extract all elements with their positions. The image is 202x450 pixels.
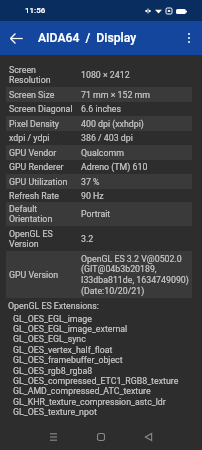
staticText: 386 / 403 dpi <box>81 133 133 143</box>
staticText: Screen Resolution <box>9 65 81 85</box>
button[interactable]: GPU Vendor <box>6 145 192 160</box>
staticText: GL_KHR_texture_compression_astc_ldr <box>13 397 166 407</box>
staticText: 11:56 <box>25 6 46 15</box>
button[interactable]: Refresh Rate <box>6 189 192 202</box>
staticText: 90 Hz <box>81 191 104 201</box>
button[interactable]: Navigate up <box>0 21 32 55</box>
staticText: GPU Vendor <box>9 148 81 158</box>
staticText: OpenGL ES Extensions: <box>8 301 99 311</box>
staticText: 1080 × 2412 <box>81 70 130 80</box>
staticText: Refresh Rate <box>9 191 81 201</box>
staticText: GL_OES_EGL_sync <box>13 334 86 344</box>
button[interactable]: Screen Diagonal <box>6 102 192 116</box>
staticText: 71 mm × 152 mm <box>81 90 151 100</box>
staticText: 37 % <box>81 177 100 187</box>
staticText: GL_AMD_compressed_ATC_texture <box>13 386 151 396</box>
button[interactable]: Back <box>134 423 162 450</box>
staticText: OpenGL ES Version <box>9 229 81 249</box>
staticText: 6.6 inches <box>81 104 122 114</box>
staticText: 3.2 <box>81 234 94 244</box>
staticText: Default Orientation <box>9 204 81 224</box>
staticText: 400 dpi (xxhdpi) <box>81 119 144 129</box>
staticText: GL_OES_framebuffer_object <box>13 355 123 365</box>
staticText: GL_OES_EGL_image <box>13 314 92 324</box>
button[interactable]: Pixel Density <box>6 116 192 131</box>
staticText: GPU Renderer <box>9 162 81 172</box>
staticText: GPU Version <box>9 270 81 280</box>
button[interactable]: Screen Resolution <box>6 62 192 87</box>
staticText: xdpi / ydpi <box>9 133 81 143</box>
staticText: GL_OES_rgb8_rgba8 <box>13 366 93 376</box>
staticText: Screen Diagonal <box>9 104 81 114</box>
staticText: GL_OES_EGL_image_external <box>13 324 128 334</box>
button[interactable]: GPU Version <box>6 251 192 298</box>
button[interactable]: Default Orientation <box>6 202 192 226</box>
button[interactable]: GPU Utilization <box>6 174 192 189</box>
staticText: GPU Utilization <box>9 177 81 187</box>
staticText: Qualcomm <box>81 148 124 158</box>
staticText: Pixel Density <box>9 119 81 129</box>
staticText: GL_OES_compressed_ETC1_RGB8_texture <box>13 376 179 386</box>
staticText: Adreno (TM) 610 <box>81 162 148 172</box>
button[interactable]: GPU Renderer <box>6 160 192 174</box>
button[interactable]: Home <box>87 423 115 450</box>
staticText: GL_OES_texture_npot <box>13 407 97 417</box>
button[interactable]: Recent apps <box>39 423 67 450</box>
button[interactable]: Screen Size <box>6 87 192 102</box>
button[interactable]: OpenGL ES Version <box>6 226 192 251</box>
staticText: Portrait <box>81 209 111 219</box>
staticText: AIDA64 / Display <box>38 31 137 45</box>
button[interactable]: xdpi / ydpi <box>6 131 192 145</box>
staticText: GL_OES_vertex_half_float <box>13 345 113 355</box>
staticText: OpenGL ES 3.2 V@0502.0 (GIT@04b3b20189, … <box>81 254 189 296</box>
staticText: Screen Size <box>9 90 81 100</box>
button[interactable]: More options <box>176 21 202 55</box>
